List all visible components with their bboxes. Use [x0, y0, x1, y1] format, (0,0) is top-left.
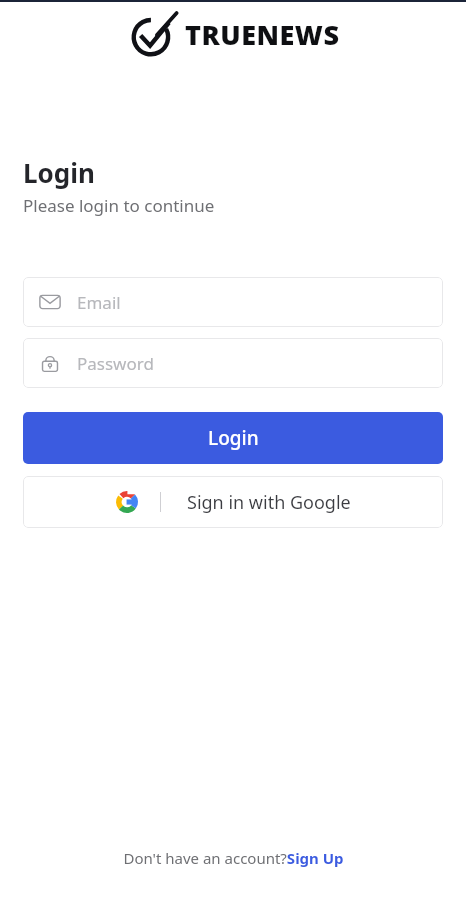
staticText: TRUENEWS — [185, 16, 340, 53]
other: Password — [39, 352, 61, 374]
staticText: Login — [23, 155, 95, 190]
button[interactable]: Password — [23, 338, 443, 388]
staticText: Sign in with Google — [187, 490, 351, 515]
staticText: Email — [77, 291, 121, 314]
staticText: Don't have an account?Sign Up — [123, 848, 344, 868]
button[interactable]: Don't have an account?Sign Up — [117, 844, 350, 872]
other: Google — [116, 491, 138, 513]
other: Email — [39, 291, 61, 313]
staticText: Please login to continue — [23, 194, 215, 217]
button[interactable]: Login — [23, 412, 443, 464]
staticText: Login — [208, 425, 259, 451]
staticText: Password — [77, 352, 154, 375]
other: TrueNews logo — [127, 8, 179, 60]
button[interactable]: Email — [23, 277, 443, 327]
button[interactable]: Google — [23, 476, 443, 528]
